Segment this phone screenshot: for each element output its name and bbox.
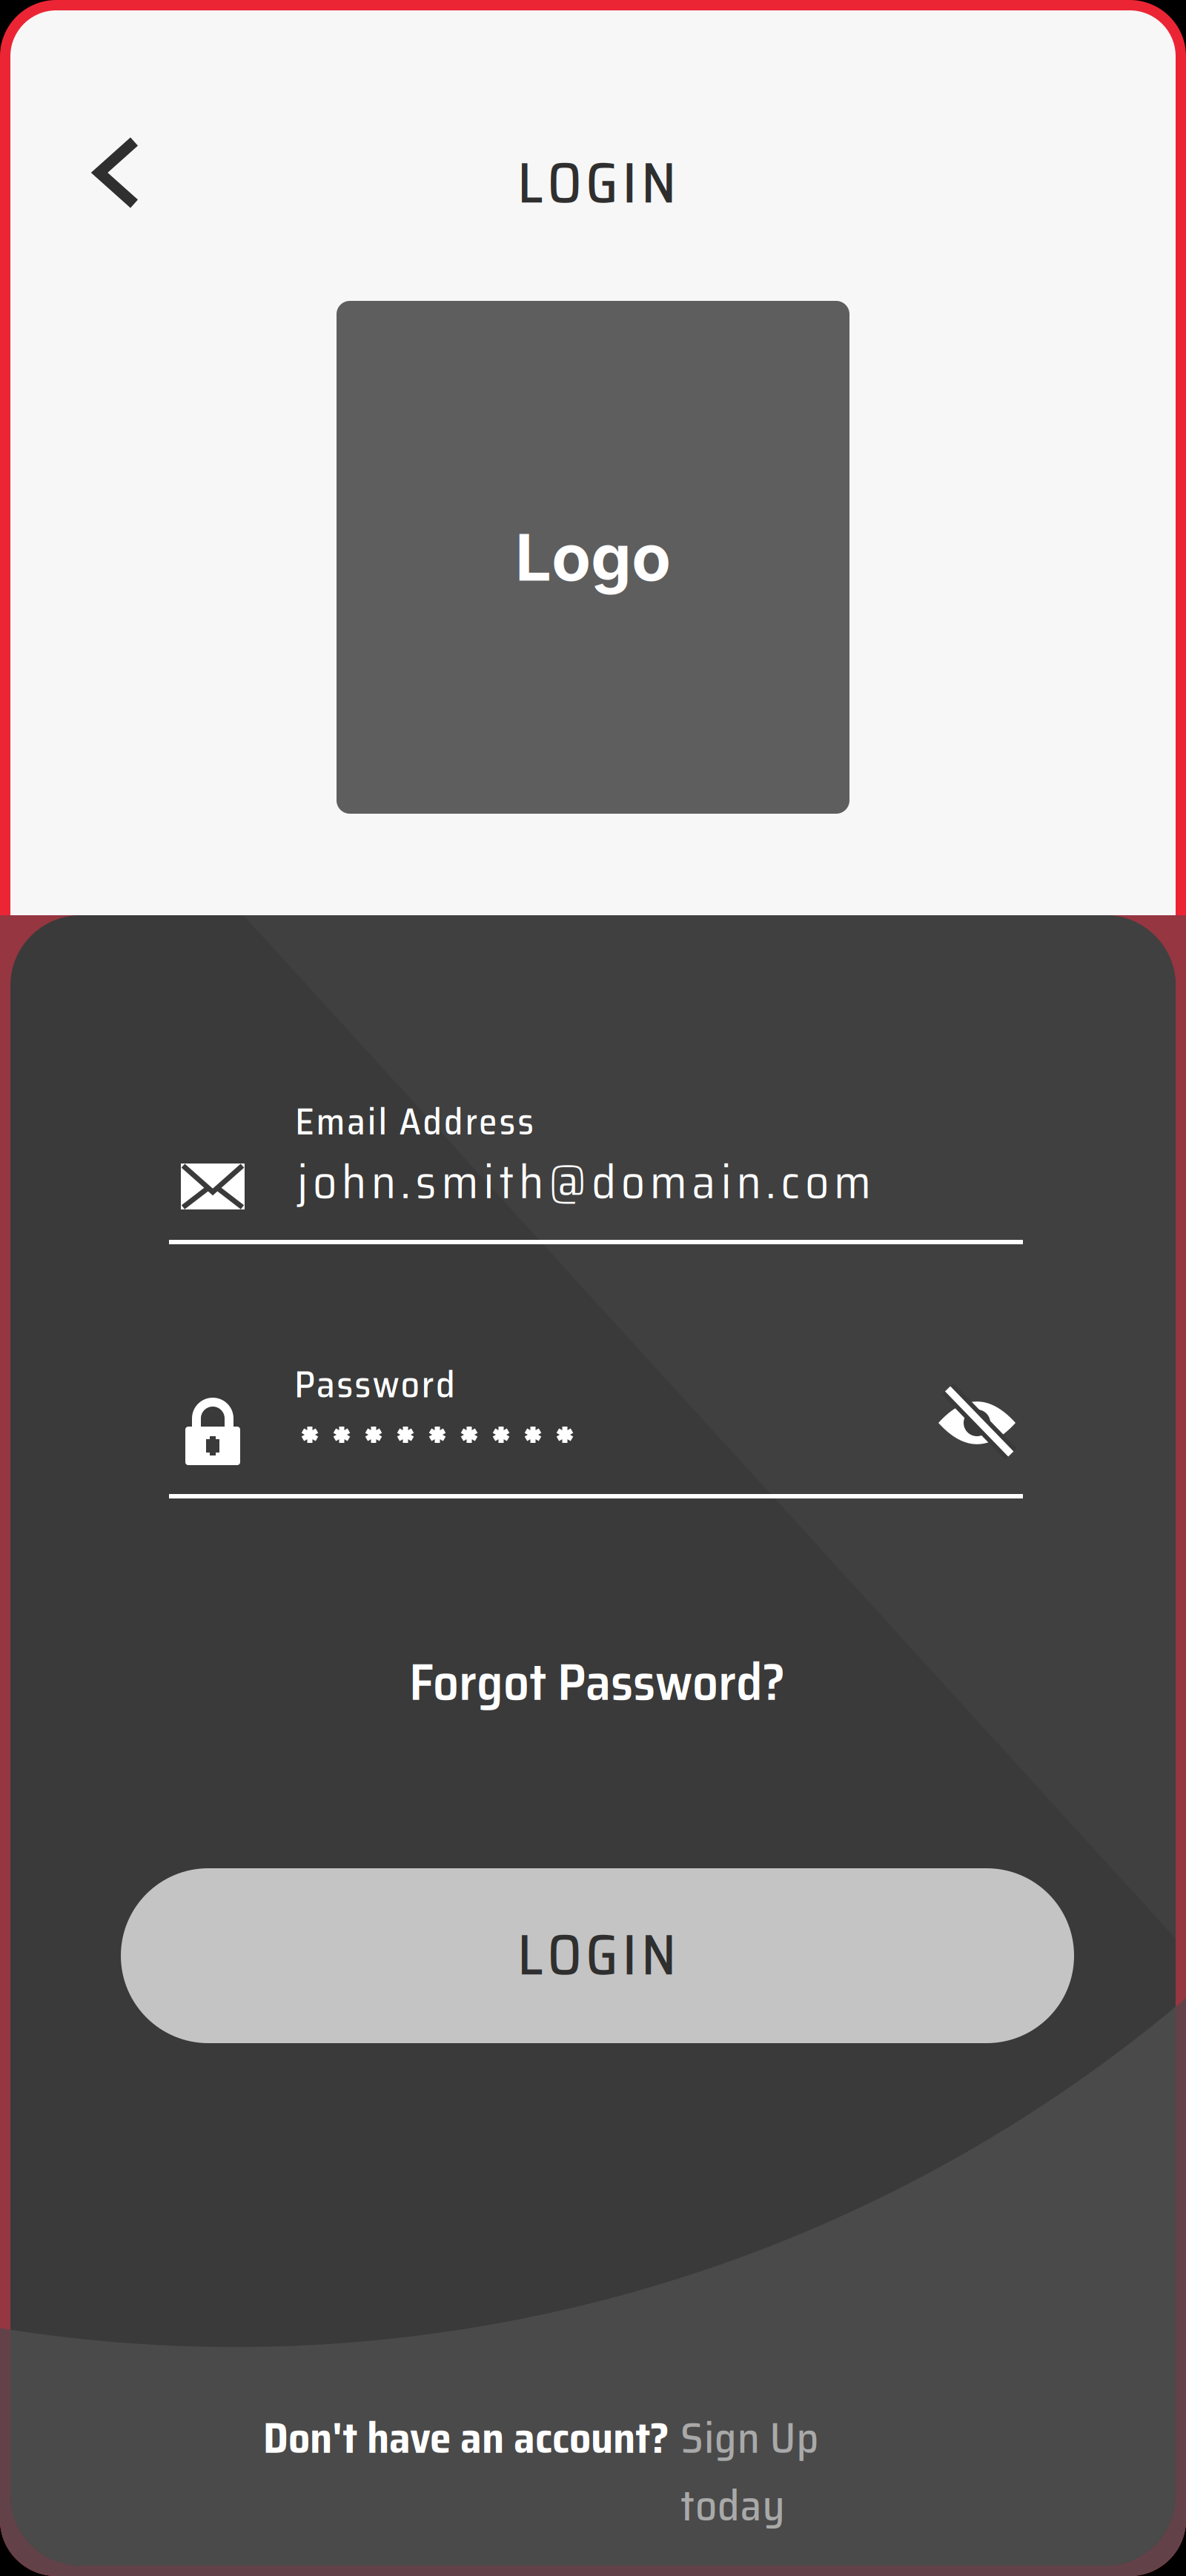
button[interactable]: LOGIN [0, 0, 1186, 89]
staticText: Don't have an account? [263, 2404, 669, 2472]
staticText: Forgot Password? [409, 1641, 786, 1722]
staticText: LOGIN [517, 139, 692, 227]
staticText: Sign Up today [680, 2404, 943, 2472]
button[interactable]: Forgot Password? [0, 0, 1186, 89]
button[interactable]: Show password [919, 1370, 1035, 1473]
button[interactable]: Don't have an account? [0, 0, 1186, 89]
staticText: Email Address [295, 1092, 544, 1151]
staticText: LOGIN [517, 1911, 692, 1999]
button[interactable]: Back [68, 110, 165, 235]
staticText: john.smith@domain.com [297, 1144, 886, 1219]
staticText: Logo [515, 518, 671, 596]
staticText: Password [294, 1355, 465, 1414]
button[interactable]: LOGIN [0, 0, 1186, 175]
